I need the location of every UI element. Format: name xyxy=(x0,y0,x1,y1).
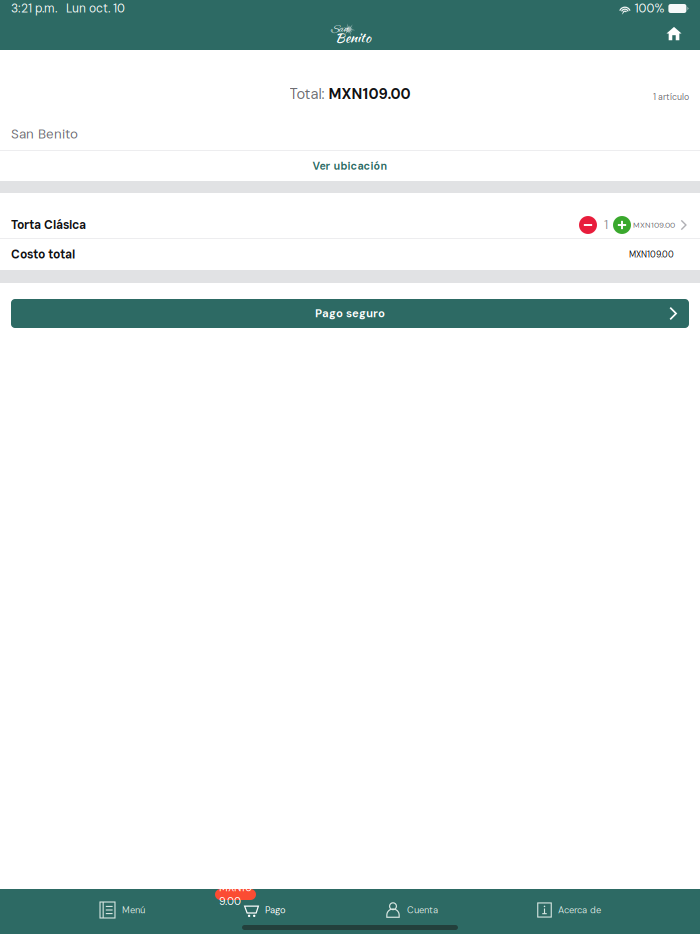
staticText: MXN109.00 xyxy=(629,249,674,260)
staticText: Pago xyxy=(265,904,286,916)
button[interactable]: Pago xyxy=(244,889,286,919)
button[interactable]: Cuenta xyxy=(385,889,438,919)
staticText: Torta Clásica xyxy=(11,217,86,233)
staticText: Cuenta xyxy=(407,904,438,916)
staticText: Pago seguro xyxy=(315,306,385,321)
button[interactable]: Acerca de xyxy=(537,889,601,919)
staticText: 1 artículo xyxy=(653,91,689,103)
staticText: Ver ubicación xyxy=(312,159,387,173)
button[interactable]: Torta Clásica xyxy=(0,193,700,238)
staticText: San Benito xyxy=(11,125,78,143)
staticText: Acerca de xyxy=(558,904,601,916)
button[interactable]: Menú xyxy=(99,889,145,919)
staticText: Total: xyxy=(289,84,328,104)
staticText: MXN109.00 xyxy=(328,84,410,104)
staticText: 3:21 p.m. Lun oct. 10 xyxy=(11,1,125,16)
staticText: Costo total xyxy=(11,247,75,262)
staticText: San xyxy=(331,22,349,37)
staticText: MXN109.00 xyxy=(219,881,252,908)
staticText: Menú xyxy=(122,904,145,916)
button[interactable]: Ver ubicación xyxy=(0,151,700,181)
staticText: 100% xyxy=(634,1,664,16)
button[interactable]: Inicio xyxy=(659,20,689,46)
staticText: 1 xyxy=(604,217,608,233)
staticText: Benito xyxy=(335,28,371,47)
button[interactable]: Pago seguro xyxy=(0,283,700,328)
staticText: MXN109.00 xyxy=(633,220,675,230)
